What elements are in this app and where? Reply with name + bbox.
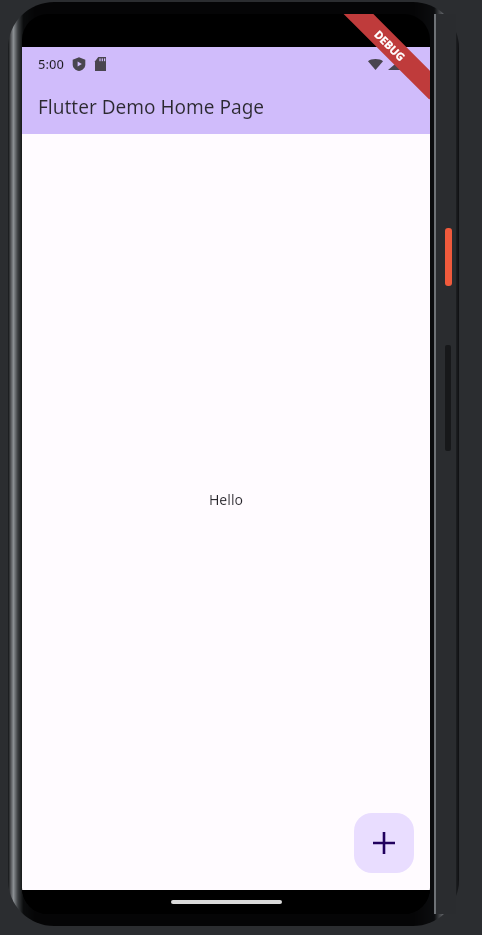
staticText: DEBUG: [371, 27, 409, 64]
staticText: 5:00: [38, 55, 64, 73]
button[interactable]: Home: [171, 900, 282, 904]
other: Power: [445, 228, 452, 286]
staticText: Flutter Demo Home Page: [38, 94, 265, 120]
staticText: Hello: [209, 490, 243, 509]
button[interactable]: Add: [354, 813, 414, 873]
